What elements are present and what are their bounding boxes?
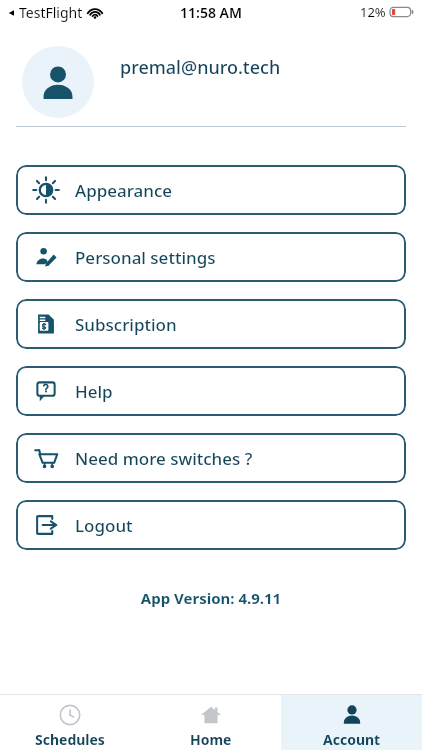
staticText: premal@nuro.tech xyxy=(120,55,281,80)
staticText: Help xyxy=(75,380,113,403)
staticText: Account xyxy=(323,730,381,749)
button[interactable]: Help xyxy=(16,366,406,416)
button[interactable]: Appearance xyxy=(16,165,406,215)
button[interactable]: Personal settings xyxy=(16,232,406,282)
button[interactable] xyxy=(22,46,94,118)
staticText: TestFlight xyxy=(19,3,83,22)
button[interactable]: Subscription xyxy=(16,299,406,349)
staticText: Logout xyxy=(75,514,133,537)
button[interactable]: Schedules xyxy=(0,695,140,750)
staticText: Subscription xyxy=(75,313,177,336)
staticText: App Version: 4.9.11 xyxy=(0,588,422,608)
staticText: Home xyxy=(190,730,232,749)
button[interactable]: Need more switches ? xyxy=(16,433,406,483)
button[interactable]: Home xyxy=(140,695,281,750)
staticText: Appearance xyxy=(75,179,173,202)
staticText: Need more switches ? xyxy=(75,447,253,470)
staticText: 11:58 AM xyxy=(180,3,242,22)
staticText: Schedules xyxy=(35,730,105,749)
staticText: Personal settings xyxy=(75,246,216,269)
button[interactable]: Account xyxy=(281,695,422,750)
staticText: 12% xyxy=(360,3,386,21)
button[interactable]: Logout xyxy=(16,500,406,550)
